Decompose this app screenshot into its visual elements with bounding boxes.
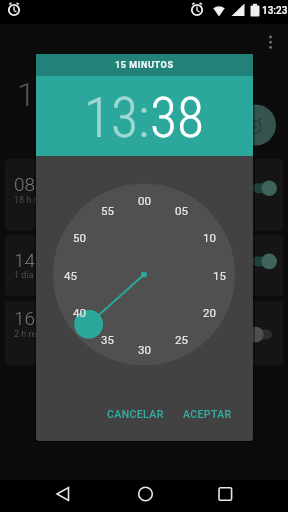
staticText: 18 h restantes [14,195,72,206]
button[interactable] [235,105,276,146]
button[interactable] [206,482,246,510]
staticText: 38 [150,86,205,151]
button[interactable] [5,235,283,296]
button[interactable] [248,322,276,347]
staticText: 10 [203,231,216,244]
button[interactable] [5,159,283,230]
staticText: 13:23 [262,5,288,17]
staticText: 05 [175,204,188,217]
staticText: 40 [73,306,86,319]
button[interactable]: ACEPTAR [176,400,238,427]
button[interactable] [126,482,166,510]
staticText: 16:00 [14,307,61,329]
button[interactable] [48,482,88,510]
staticText: 50 [73,231,86,244]
staticText: ACEPTAR [183,408,232,420]
staticText: 14:30 [14,249,61,271]
staticText: 25 [175,333,188,346]
button[interactable] [5,301,283,365]
staticText: 15 [213,269,226,282]
button[interactable] [262,30,280,54]
staticText: CANCELAR [107,408,164,420]
button[interactable]: CANCELAR [103,400,167,427]
staticText: 13 [17,76,54,106]
staticText: 08:00 [14,173,61,195]
staticText: 2 h restantes [14,329,67,340]
button[interactable] [251,249,279,274]
staticText: 35 [101,333,114,346]
staticText: 13: [84,86,150,151]
button[interactable] [251,176,279,201]
staticText: 30 [138,343,151,356]
staticText: 20 [203,306,216,319]
staticText: 55 [101,204,114,217]
staticText: 15 MINUTOS [115,60,174,71]
staticText: 1 día restante [14,270,69,281]
staticText: 45 [64,269,77,282]
staticText: 00 [138,194,151,207]
